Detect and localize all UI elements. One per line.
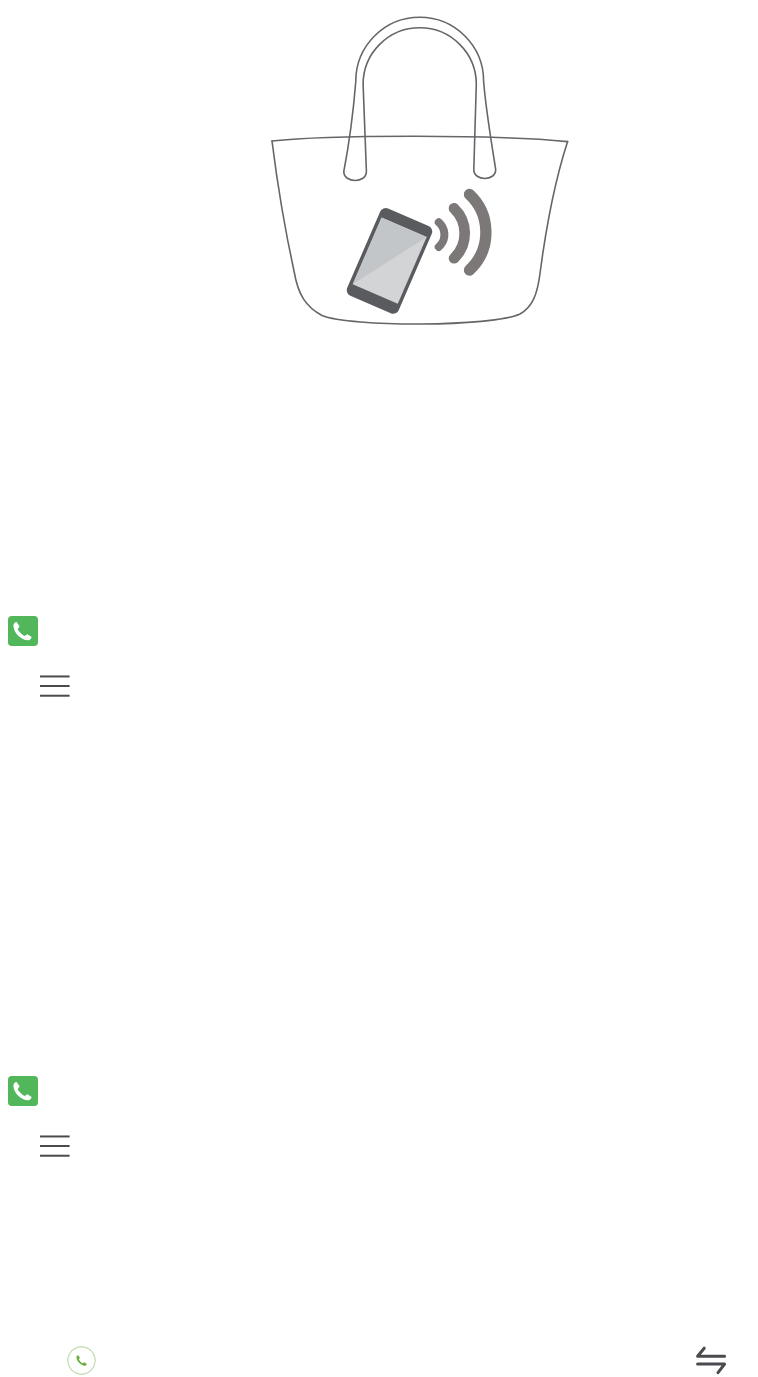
button[interactable]: Call: [67, 1346, 96, 1375]
button[interactable]: Phone: [8, 1076, 38, 1106]
button[interactable]: Menu: [36, 1128, 76, 1164]
button[interactable]: Phone: [8, 616, 38, 646]
button[interactable]: Switch call: [694, 1344, 727, 1377]
button[interactable]: Menu: [36, 668, 76, 704]
